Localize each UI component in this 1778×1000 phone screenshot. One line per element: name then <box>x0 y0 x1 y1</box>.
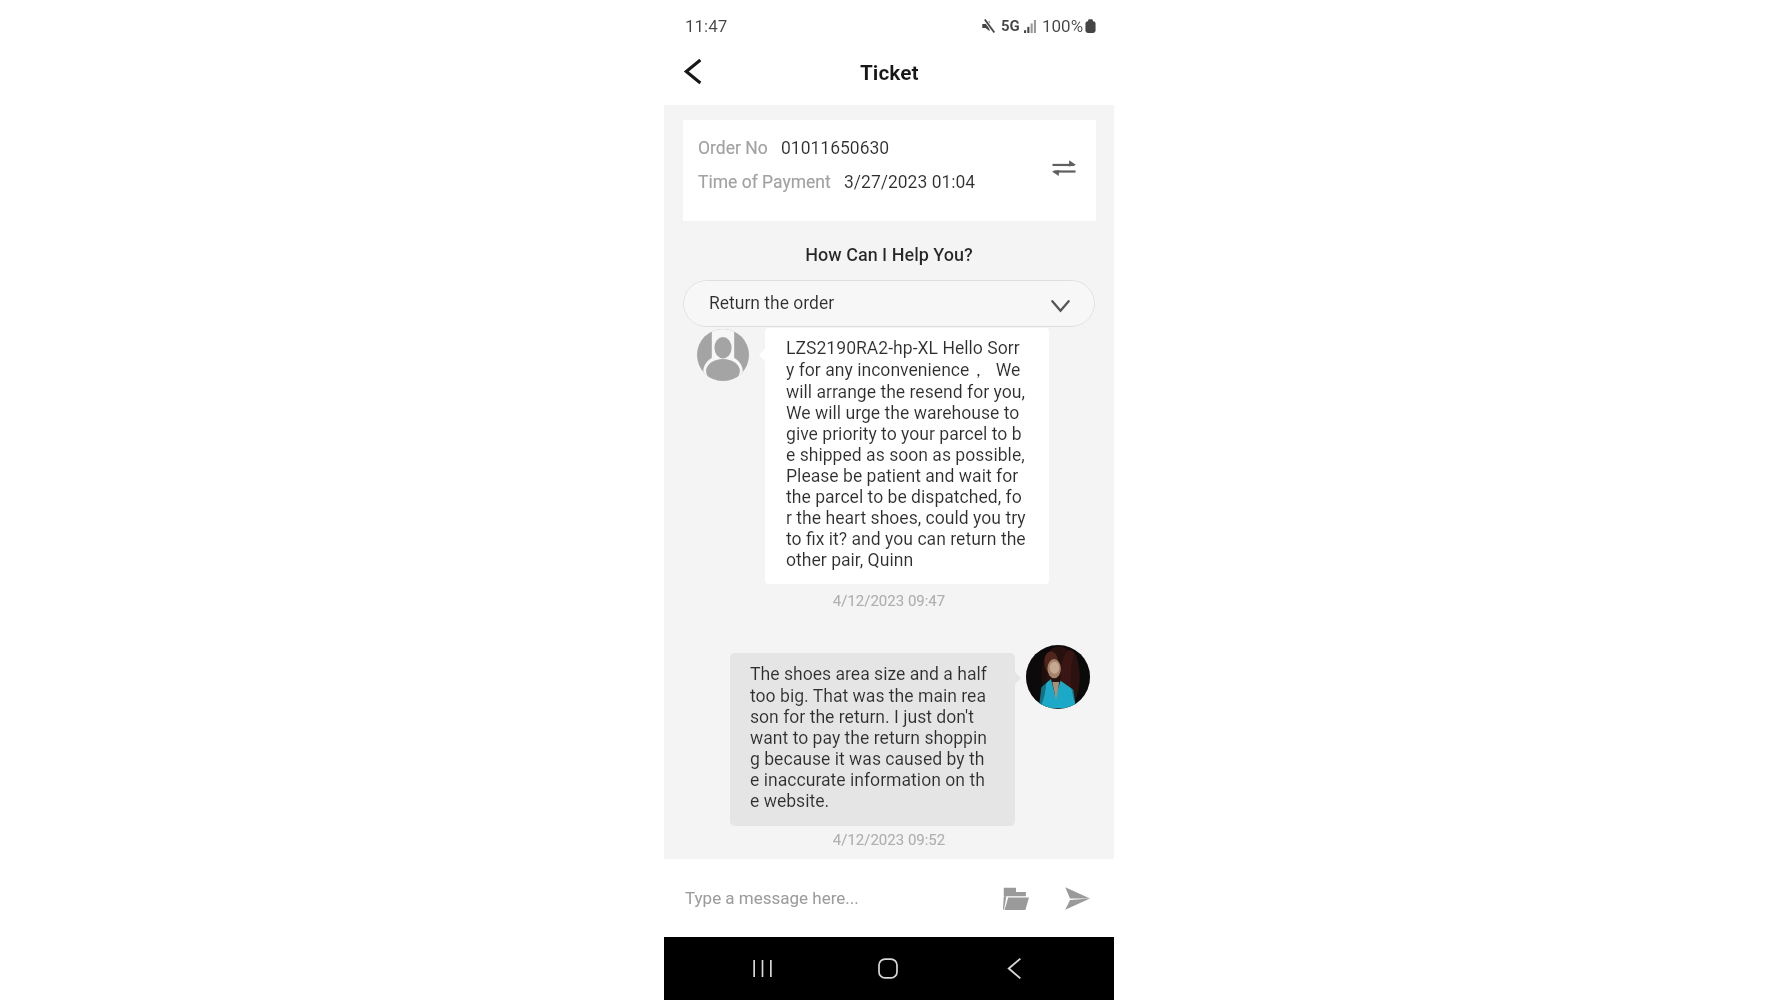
staticText: 5G <box>1001 17 1020 35</box>
button[interactable]: Recent apps <box>732 937 792 1000</box>
staticText: The shoes area size and a half too big. … <box>750 664 987 811</box>
staticText: Return the order <box>709 293 835 314</box>
button[interactable]: LZS2190RA2-hp-XL Hello Sorr y for any in… <box>765 328 1049 584</box>
staticText: 01011650630 <box>781 138 890 159</box>
button[interactable]: Switch order <box>1046 150 1082 186</box>
staticText: Time of Payment <box>698 172 831 193</box>
staticText: 3/27/2023 01:04 <box>844 172 976 193</box>
button[interactable]: The shoes area size and a half too big. … <box>730 653 1015 826</box>
button[interactable]: Back <box>669 47 717 95</box>
button[interactable]: Return the order <box>683 280 1095 327</box>
staticText: 11:47 <box>685 16 728 36</box>
button[interactable]: Type a message here... <box>676 873 926 923</box>
button[interactable]: Back <box>984 937 1044 1000</box>
button[interactable]: Attach file <box>994 876 1038 920</box>
staticText: 100% <box>1042 16 1084 36</box>
staticText: 4/12/2023 09:52 <box>664 831 1114 849</box>
staticText: LZS2190RA2-hp-XL Hello Sorr y for any in… <box>786 338 1026 570</box>
staticText: Order No <box>698 138 768 159</box>
staticText: Ticket <box>860 61 919 85</box>
button[interactable]: Home <box>858 937 918 1000</box>
button[interactable]: Send <box>1055 876 1099 920</box>
button[interactable]: Order No <box>683 120 1096 221</box>
staticText: Type a message here... <box>685 888 859 908</box>
staticText: 4/12/2023 09:47 <box>664 592 1114 610</box>
staticText: How Can I Help You? <box>664 244 1114 265</box>
